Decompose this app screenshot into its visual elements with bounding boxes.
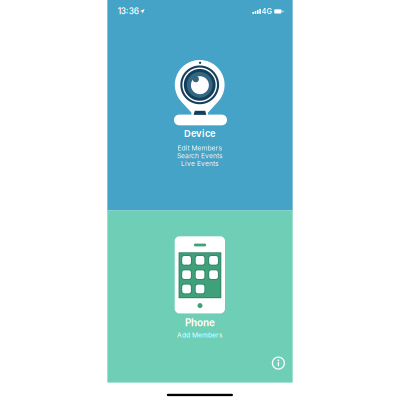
- button[interactable]: Phone: [0, 0, 400, 400]
- staticText: Edit Members: [177, 144, 222, 152]
- staticText: Add Members: [177, 331, 223, 339]
- button[interactable]: Info: [0, 0, 400, 400]
- staticText: Device: [184, 128, 216, 139]
- staticText: Search Events: [177, 152, 223, 160]
- staticText: Phone: [185, 316, 215, 329]
- button[interactable]: Device: [0, 0, 400, 400]
- staticText: 4G: [261, 7, 271, 16]
- staticText: Live Events: [181, 160, 219, 168]
- staticText: 13:36: [118, 6, 139, 16]
